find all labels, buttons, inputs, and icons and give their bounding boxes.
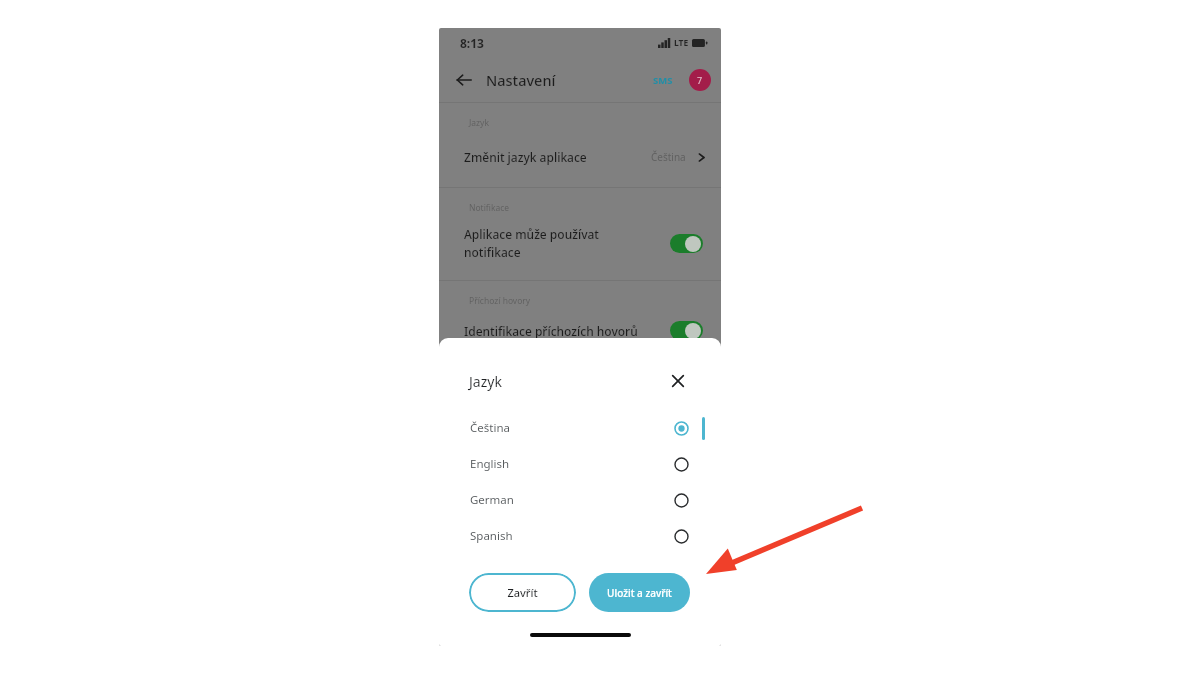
staticText: German [470,492,514,508]
button[interactable]: Aplikace může používat [439,226,721,260]
staticText: Změnit jazyk aplikace [464,149,587,165]
button[interactable]: Toggle [670,234,703,253]
staticText: notifikace [464,244,521,260]
button[interactable]: Toggle [670,321,703,340]
button[interactable]: Close [665,368,691,394]
staticText: English [470,456,510,472]
staticText: Příchozí hovory [469,295,531,307]
staticText: Jazyk [469,117,489,129]
button[interactable]: Uložit a zavřít [589,573,690,612]
staticText: Notifikace [469,202,510,214]
staticText: SMS [653,74,673,87]
button[interactable]: German [439,482,721,518]
staticText: Uložit a zavřít [607,586,672,600]
button[interactable]: Změnit jazyk aplikace [439,143,721,171]
staticText: Aplikace může používat [464,226,599,242]
staticText: Identifikace příchozích hovorů [464,323,670,339]
staticText: LTE [674,37,689,49]
staticText: Jazyk [469,372,502,391]
button[interactable]: Spanish [439,518,721,554]
staticText: Čeština [470,420,510,436]
button[interactable]: English [439,446,721,482]
staticText: 7 [697,74,703,86]
button[interactable]: Zavřít [469,573,576,612]
staticText: Čeština [651,150,686,164]
button[interactable]: Profile [689,69,711,91]
staticText: Zavřít [507,585,538,600]
button[interactable]: Identifikace příchozích hovorů [439,321,721,340]
button[interactable]: Čeština [439,410,721,446]
staticText: Spanish [470,528,513,544]
button[interactable]: Back [449,65,479,95]
staticText: Nastavení [486,70,556,90]
staticText: 8:13 [460,35,484,51]
button[interactable]: SMS [649,71,677,90]
